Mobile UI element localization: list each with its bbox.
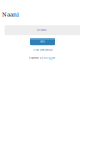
staticText: View web version [33,49,52,52]
staticText: . [55,57,56,60]
button[interactable]: Blogger [44,57,55,60]
button[interactable]: Home [30,38,55,45]
button[interactable]: View web version [0,49,85,52]
staticText: Powered by [29,57,44,60]
staticText: Naani [2,10,19,18]
staticText: No posts. [37,29,47,31]
staticText: Home [40,40,45,43]
staticText: Blogger [44,57,55,60]
